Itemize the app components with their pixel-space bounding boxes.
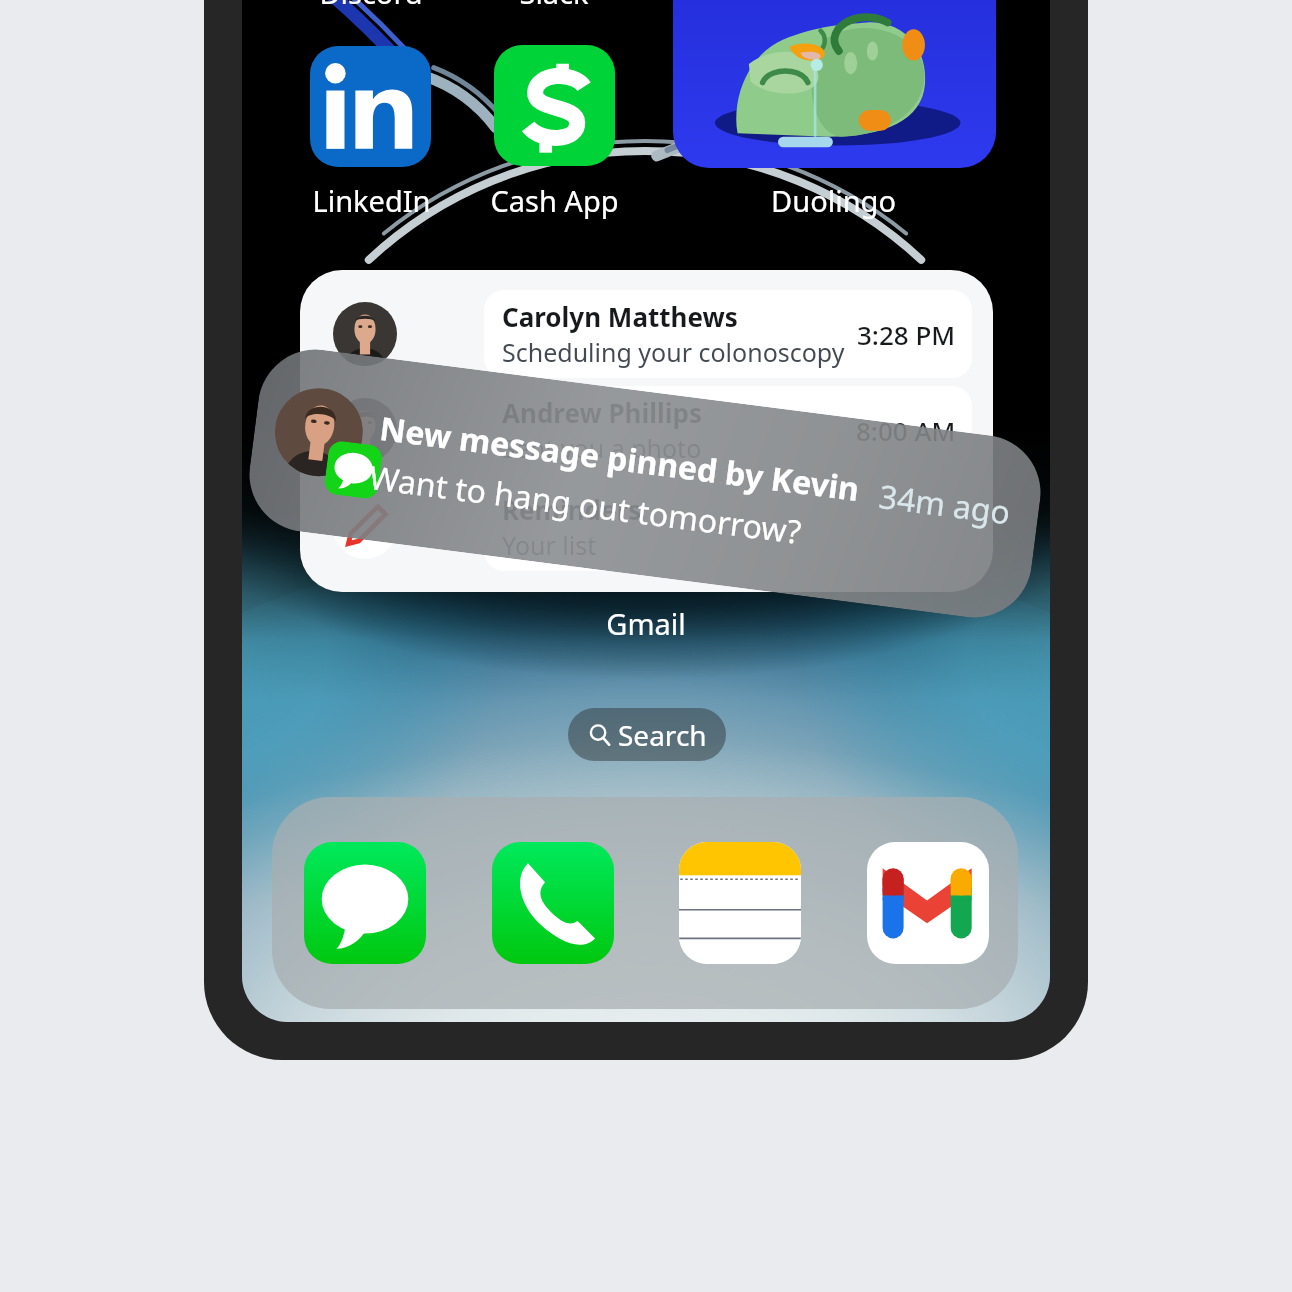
staticText: Want to hang out tomorrow?: [367, 455, 804, 554]
button[interactable]: Carolyn Matthews: [484, 290, 972, 378]
staticText: Discord: [319, 0, 423, 12]
staticText: 34m ago: [876, 474, 1013, 534]
staticText: Andrew Phillips: [502, 395, 703, 430]
staticText: Scheduling your colonoscopy: [502, 335, 845, 369]
staticText: Gmail: [606, 604, 686, 643]
staticText: Slack: [519, 0, 589, 12]
button[interactable]: Search: [568, 708, 726, 761]
button[interactable]: Reminders: [484, 483, 972, 571]
staticText: Search: [618, 716, 707, 754]
button[interactable]: Gmail: [867, 842, 989, 964]
staticText: LinkedIn: [312, 181, 431, 220]
staticText: Carolyn Matthews: [502, 299, 738, 334]
button[interactable]: LinkedIn: [310, 46, 431, 167]
staticText: New message pinned by Kevin: [377, 406, 863, 511]
staticText: 3:28 PM: [857, 317, 956, 352]
staticText: Cash App: [490, 181, 619, 220]
button[interactable]: New message pinned by Kevin: [243, 343, 1047, 624]
button[interactable]: Messages: [304, 842, 426, 964]
staticText: Your list: [502, 528, 597, 562]
button[interactable]: Duolingo: [673, 0, 996, 168]
staticText: Sent you a photo: [502, 431, 702, 465]
staticText: 8:00 AM: [856, 413, 956, 448]
staticText: Duolingo: [771, 181, 896, 220]
staticText: Reminders: [502, 492, 642, 527]
button[interactable]: Andrew Phillips: [484, 386, 972, 474]
button[interactable]: Notes: [679, 842, 801, 964]
button[interactable]: Cash App: [494, 45, 615, 166]
button[interactable]: Phone: [492, 842, 614, 964]
